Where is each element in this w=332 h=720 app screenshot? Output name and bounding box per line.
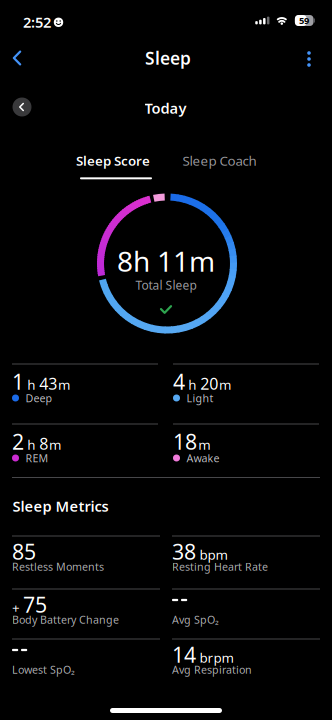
button[interactable]: Sleep Coach <box>171 146 267 174</box>
staticText: Sleep Coach <box>182 152 256 169</box>
staticText: Sleep Metrics <box>12 496 108 516</box>
staticText: Avg Respiration <box>172 662 252 677</box>
staticText: m <box>219 376 231 393</box>
staticText: 14 <box>172 640 196 669</box>
staticText: 85 <box>12 537 36 566</box>
staticText: bpm <box>199 546 227 563</box>
button[interactable]: Back <box>3 44 31 72</box>
staticText: h <box>27 376 35 393</box>
staticText: m <box>198 436 210 453</box>
staticText: 38 <box>172 537 196 566</box>
staticText: brpm <box>199 649 233 666</box>
staticText: Sleep Score <box>76 152 150 169</box>
staticText: 2:52 <box>23 12 51 32</box>
staticText: Avg SpO₂ <box>172 612 219 627</box>
staticText: m <box>58 376 70 393</box>
staticText: 20 <box>200 373 218 394</box>
staticText: Light <box>186 391 213 405</box>
staticText: Total Sleep <box>135 277 196 293</box>
button[interactable]: More <box>297 46 321 72</box>
staticText: 4 <box>173 367 185 396</box>
staticText: REM <box>25 451 48 465</box>
staticText: 8 <box>39 433 48 454</box>
button[interactable]: Previous day <box>12 97 31 116</box>
staticText: 43 <box>39 373 57 394</box>
staticText: h <box>188 376 196 393</box>
staticText: 2 <box>12 427 24 456</box>
staticText: Restless Moments <box>12 559 104 574</box>
staticText: 59 <box>299 14 309 27</box>
staticText: 8h 11m <box>117 242 215 280</box>
button[interactable]: Sleep Score <box>65 146 161 174</box>
staticText: Lowest SpO₂ <box>12 662 75 677</box>
staticText: 1 <box>12 367 24 396</box>
staticText: 75 <box>23 590 47 619</box>
staticText: 18 <box>173 427 197 456</box>
staticText: Body Battery Change <box>12 612 119 627</box>
staticText: Sleep <box>145 46 191 69</box>
staticText: m <box>49 436 61 453</box>
staticText: Deep <box>25 391 52 405</box>
staticText: h <box>27 436 35 453</box>
staticText: + <box>12 599 20 616</box>
staticText: Today <box>144 98 186 118</box>
staticText: Resting Heart Rate <box>172 559 268 574</box>
staticText: Awake <box>186 451 219 465</box>
